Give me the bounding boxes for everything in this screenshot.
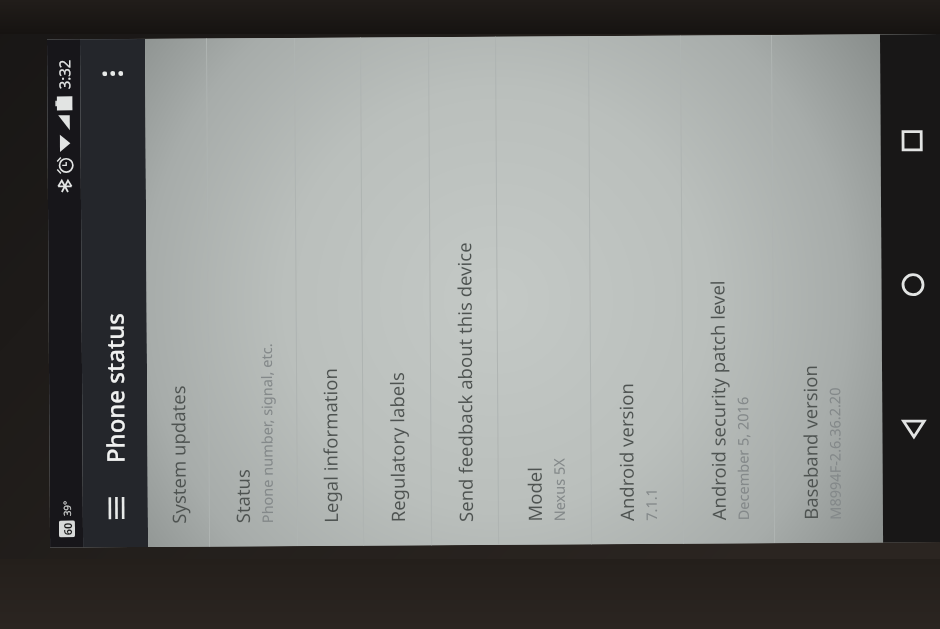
staticText: Regulatory labels	[384, 371, 410, 522]
staticText: Nexus 5X	[549, 457, 569, 521]
staticText: 3:32	[54, 59, 74, 89]
button[interactable]: System updates	[145, 38, 210, 547]
staticText: 39°	[60, 500, 74, 516]
button[interactable]: Android version	[589, 36, 684, 544]
button[interactable]: Status	[207, 38, 298, 546]
staticText: Android version	[613, 383, 639, 521]
button[interactable]: Recent apps	[880, 111, 940, 171]
staticText: Android security patch level	[704, 279, 731, 520]
staticText: System updates	[165, 385, 191, 524]
staticText: Phone status	[98, 313, 132, 463]
button[interactable]: Open navigation drawer	[83, 496, 148, 520]
staticText: Phone number, signal, etc.	[256, 343, 277, 523]
button[interactable]: Regulatory labels	[361, 37, 432, 546]
button[interactable]: Model	[496, 36, 592, 545]
button[interactable]: Baseband version	[772, 34, 883, 543]
button[interactable]: Send feedback about this device	[429, 37, 499, 545]
staticText: December 5, 2016	[732, 396, 753, 520]
staticText: Status	[230, 468, 255, 523]
staticText: M8994F-2.6.36.2.20	[824, 387, 845, 520]
staticText: Legal information	[317, 368, 343, 523]
staticText: 7.1.1	[641, 488, 661, 521]
staticText: Baseband version	[797, 365, 823, 520]
button[interactable]: Home	[881, 255, 940, 315]
button[interactable]: Legal information	[295, 38, 364, 546]
staticText: Send feedback about this device	[451, 242, 478, 522]
button[interactable]: Back	[882, 399, 940, 459]
button[interactable]: Android security patch level	[681, 35, 775, 544]
staticText: 60	[60, 522, 75, 535]
button[interactable]: More options	[80, 39, 145, 109]
staticText: Model	[522, 466, 547, 522]
